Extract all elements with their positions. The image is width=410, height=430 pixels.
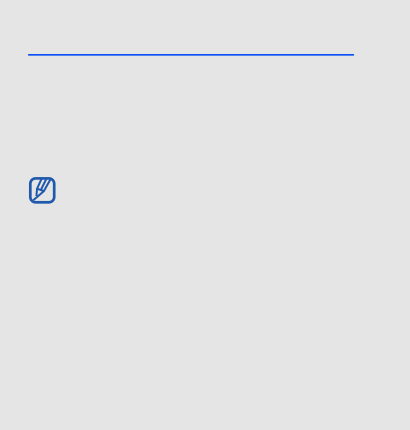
button[interactable]: Note xyxy=(29,177,55,204)
